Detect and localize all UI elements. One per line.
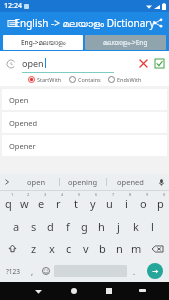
button[interactable]: Menu xyxy=(4,15,20,31)
button[interactable]: a xyxy=(8,214,25,237)
staticText: Opened xyxy=(9,118,38,128)
button[interactable]: History xyxy=(4,57,17,70)
button[interactable]: Eng->മലയാളം xyxy=(3,35,83,50)
button[interactable]: 0 xyxy=(152,191,169,214)
staticText: Eng->മലയാളം xyxy=(21,38,66,47)
button[interactable]: c xyxy=(60,237,77,260)
button[interactable]: മലയാളം->Eng xyxy=(85,35,166,50)
staticText: p xyxy=(157,196,164,211)
button[interactable]: Opener xyxy=(2,135,167,156)
staticText: j xyxy=(117,219,120,234)
button[interactable]: 1 xyxy=(0,191,16,214)
staticText: Open xyxy=(9,95,29,105)
button[interactable]: 3 xyxy=(33,191,50,214)
staticText: , xyxy=(31,266,34,277)
button[interactable]: n xyxy=(111,237,128,260)
staticText: . xyxy=(133,266,136,277)
button[interactable]: opening xyxy=(60,174,106,190)
button[interactable]: Back xyxy=(21,282,56,300)
button[interactable]: 2 xyxy=(16,191,33,214)
button[interactable]: d xyxy=(42,214,59,237)
button[interactable]: b xyxy=(94,237,111,260)
staticText: g xyxy=(81,219,88,234)
button[interactable]: 7 xyxy=(101,191,118,214)
staticText: Contains xyxy=(78,76,101,83)
staticText: 12:24 xyxy=(4,1,22,11)
staticText: n xyxy=(116,241,123,256)
button[interactable]: Search xyxy=(152,56,166,70)
button[interactable]: Share xyxy=(150,15,166,31)
staticText: q xyxy=(5,196,12,211)
button[interactable]: Hide keyboard xyxy=(126,282,158,300)
button[interactable]: h xyxy=(93,214,110,237)
button[interactable]: Enter xyxy=(147,263,163,279)
button[interactable]: l xyxy=(144,214,161,237)
button[interactable]: Recent apps xyxy=(91,282,126,300)
staticText: m xyxy=(131,241,142,256)
staticText: o xyxy=(140,196,147,211)
button[interactable]: open xyxy=(14,174,59,190)
button[interactable]: 5 xyxy=(67,191,84,214)
button[interactable]: EndsWith xyxy=(108,76,142,83)
staticText: 0 xyxy=(163,192,166,197)
staticText: k xyxy=(133,219,139,234)
staticText: e xyxy=(38,196,45,211)
button[interactable]: opened xyxy=(107,174,153,190)
staticText: x xyxy=(49,241,55,256)
button[interactable]: More suggestions xyxy=(0,174,14,190)
button[interactable]: Backspace xyxy=(145,237,169,260)
staticText: Opener xyxy=(9,141,36,151)
staticText: s xyxy=(31,219,37,234)
staticText: d xyxy=(47,219,54,234)
staticText: 3 xyxy=(44,192,47,197)
button[interactable]: Opened xyxy=(2,112,167,133)
staticText: open xyxy=(27,177,46,187)
button[interactable]: ?123 xyxy=(0,260,26,282)
button[interactable]: k xyxy=(127,214,144,237)
button[interactable]: x xyxy=(43,237,60,260)
button[interactable]: Clear xyxy=(136,56,150,70)
staticText: f xyxy=(66,219,70,234)
button[interactable]: Emoji xyxy=(38,260,54,282)
staticText: l xyxy=(151,219,154,234)
staticText: b xyxy=(99,241,106,256)
staticText: 2 xyxy=(27,192,30,197)
button[interactable]: 6 xyxy=(84,191,101,214)
staticText: 7 xyxy=(112,192,115,197)
button[interactable]: 8 xyxy=(118,191,135,214)
staticText: 4 xyxy=(61,192,64,197)
staticText: StartWith xyxy=(37,76,62,83)
button[interactable]: j xyxy=(110,214,127,237)
staticText: c xyxy=(66,241,72,256)
button[interactable]: StartWith xyxy=(28,76,62,83)
button[interactable]: 9 xyxy=(135,191,152,214)
staticText: 8 xyxy=(129,192,132,197)
button[interactable]: v xyxy=(77,237,94,260)
button[interactable]: z xyxy=(25,237,43,260)
button[interactable]: g xyxy=(76,214,93,237)
staticText: w xyxy=(20,196,29,211)
button[interactable]: Shift xyxy=(0,237,25,260)
staticText: opening xyxy=(68,177,98,187)
button[interactable]: s xyxy=(25,214,42,237)
staticText: open xyxy=(22,57,44,69)
button[interactable]: Voice input xyxy=(153,174,169,190)
staticText: i xyxy=(125,196,128,211)
button[interactable]: , xyxy=(26,260,38,282)
staticText: a xyxy=(13,219,20,234)
button[interactable]: Contains xyxy=(69,76,101,83)
button[interactable]: 4 xyxy=(50,191,67,214)
button[interactable]: m xyxy=(128,237,145,260)
staticText: ?123 xyxy=(6,267,20,276)
button[interactable]: f xyxy=(59,214,76,237)
staticText: 1 xyxy=(11,192,14,197)
staticText: v xyxy=(83,241,89,256)
staticText: opened xyxy=(117,177,144,187)
staticText: English -> മലയാളം Dictionary xyxy=(14,16,155,30)
button[interactable]: Home xyxy=(56,282,91,300)
staticText: y xyxy=(90,196,96,211)
button[interactable]: Open xyxy=(2,89,167,110)
button[interactable]: . xyxy=(127,260,141,282)
staticText: മലയാളം->Eng xyxy=(103,38,148,47)
